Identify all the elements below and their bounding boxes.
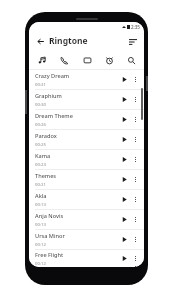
button[interactable]: Free Flight — [29, 250, 144, 267]
staticText: 2:35 — [131, 24, 140, 30]
button[interactable]: Play Graphium — [119, 94, 130, 105]
button[interactable]: More options — [130, 253, 141, 264]
button[interactable]: Play Free Flight — [119, 253, 130, 264]
button[interactable]: Dream Theme — [29, 110, 144, 130]
button[interactable]: Play Akla — [119, 194, 130, 205]
staticText: Dream Theme — [35, 112, 73, 120]
staticText: 00:31 — [35, 81, 46, 87]
staticText: 00:13 — [35, 201, 46, 207]
staticText: Akla — [35, 192, 47, 200]
button[interactable]: Ursa Minor — [29, 230, 144, 250]
staticText: Paradox — [35, 132, 57, 140]
staticText: Kama — [35, 152, 51, 160]
button[interactable]: More options — [130, 134, 141, 145]
button[interactable]: Akla — [29, 190, 144, 210]
staticText: 00:12 — [35, 241, 46, 247]
staticText: 00:25 — [35, 141, 46, 147]
button[interactable]: Music — [33, 51, 51, 69]
button[interactable]: More options — [130, 174, 141, 185]
staticText: 00:30 — [35, 101, 46, 107]
button[interactable]: Play Dream Theme — [119, 114, 130, 125]
button[interactable]: Back — [34, 35, 46, 47]
button[interactable]: Sort — [126, 35, 139, 48]
button[interactable]: Play Crazy Dream — [119, 74, 130, 85]
button[interactable]: Phone — [55, 51, 73, 69]
button[interactable]: Play Themes — [119, 174, 130, 185]
staticText: Themes — [35, 172, 57, 180]
staticText: Ursa Minor — [35, 232, 65, 240]
button[interactable]: Graphium — [29, 90, 144, 110]
button[interactable]: Themes — [29, 170, 144, 190]
button[interactable]: More options — [130, 74, 141, 85]
button[interactable]: Paradox — [29, 130, 144, 150]
button[interactable]: Play Ursa Minor — [119, 234, 130, 245]
button[interactable]: More options — [130, 214, 141, 225]
staticText: Graphium — [35, 92, 62, 100]
staticText: 00:23 — [35, 161, 46, 167]
staticText: 00:21 — [35, 181, 46, 187]
button[interactable]: Crazy Dream — [29, 70, 144, 90]
button[interactable]: More options — [130, 114, 141, 125]
button[interactable]: Alarm — [100, 51, 118, 69]
button[interactable]: More options — [130, 154, 141, 165]
button[interactable]: Play Paradox — [119, 134, 130, 145]
staticText: Ringtone — [49, 35, 88, 47]
button[interactable]: More options — [130, 94, 141, 105]
button[interactable]: More options — [130, 234, 141, 245]
button[interactable]: Search — [122, 51, 140, 69]
staticText: Crazy Dream — [35, 72, 70, 80]
button[interactable]: Kama — [29, 150, 144, 170]
staticText: 00:12 — [35, 260, 46, 266]
staticText: 00:13 — [35, 221, 46, 227]
staticText: Free Flight — [35, 251, 64, 259]
button[interactable]: Play Anja Novis — [119, 214, 130, 225]
button[interactable]: More options — [130, 194, 141, 205]
button[interactable]: Messages — [78, 51, 96, 69]
button[interactable]: Anja Novis — [29, 210, 144, 230]
staticText: Anja Novis — [35, 212, 64, 220]
staticText: 00:26 — [35, 121, 46, 127]
button[interactable]: Play Kama — [119, 154, 130, 165]
